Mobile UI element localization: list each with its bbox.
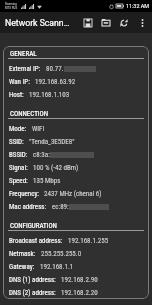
staticText: External IP: bbox=[9, 65, 41, 73]
staticText: Mac address: bbox=[9, 203, 47, 211]
staticText: Signal: bbox=[9, 164, 28, 172]
staticText: Mode: bbox=[9, 125, 27, 133]
staticText: GENERAL bbox=[10, 50, 37, 58]
button[interactable]: Open bbox=[97, 12, 115, 33]
staticText: 192.168.2.90 bbox=[61, 276, 98, 284]
staticText: Netmask: bbox=[9, 250, 36, 258]
staticText: 192.168.63.92 bbox=[35, 78, 76, 86]
staticText: WIFI bbox=[32, 125, 45, 133]
staticText: 192.168.1.1 bbox=[40, 263, 74, 271]
button[interactable]: Save bbox=[79, 12, 97, 33]
button[interactable]: Refresh bbox=[115, 12, 133, 33]
staticText: Wan IP: bbox=[9, 78, 30, 86]
staticText: Gateway: bbox=[9, 263, 35, 271]
staticText: BSSID: bbox=[9, 151, 28, 159]
staticText: DNS (2) address: bbox=[9, 289, 56, 297]
staticText: CONFIGURATION bbox=[10, 222, 57, 230]
staticText: MTS RUS bbox=[5, 6, 18, 10]
staticText: 2437 MHz (chenal 6) bbox=[44, 190, 102, 198]
staticText: Frequency: bbox=[9, 190, 39, 198]
staticText: Roaming bbox=[5, 2, 17, 6]
staticText: 192.168.2.20 bbox=[61, 289, 98, 297]
staticText: Host: bbox=[9, 91, 24, 99]
staticText: 100 % (-42 dBm) bbox=[33, 164, 79, 172]
staticText: Network Scann… bbox=[5, 18, 79, 28]
staticText: 192.168.1.103 bbox=[29, 91, 70, 99]
staticText: Broadcast address: bbox=[9, 237, 63, 245]
staticText: 255.255.255.0 bbox=[41, 250, 82, 258]
staticText: Speed: bbox=[9, 177, 28, 185]
staticText: 135 Mbps bbox=[33, 177, 61, 185]
staticText: 80.77. bbox=[46, 65, 64, 73]
staticText: CONNECTION bbox=[10, 110, 49, 118]
staticText: ec:89: bbox=[52, 203, 69, 211]
staticText: "Tenda_3E5DE8" bbox=[29, 138, 75, 146]
staticText: c8:3a: bbox=[33, 151, 50, 159]
staticText: 192.168.1.255 bbox=[68, 237, 109, 245]
staticText: DNS (1) address: bbox=[9, 276, 56, 284]
staticText: SSID: bbox=[9, 138, 24, 146]
staticText: 11:32 AM bbox=[126, 3, 149, 9]
button[interactable]: More options bbox=[133, 12, 151, 33]
